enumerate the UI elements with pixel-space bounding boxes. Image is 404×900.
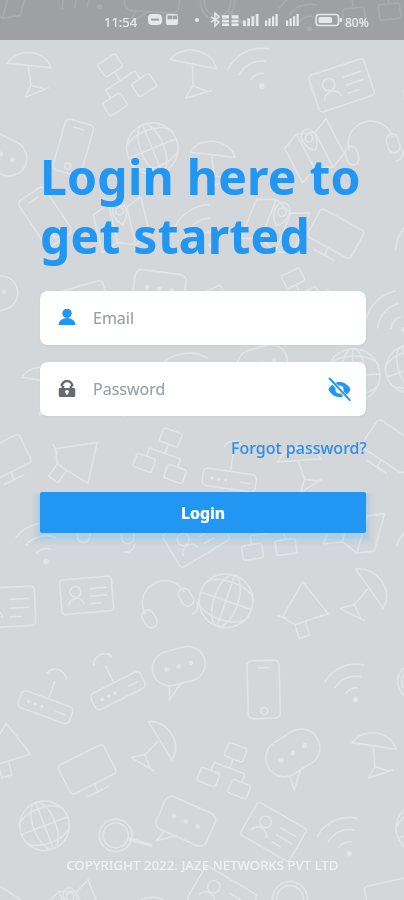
- staticText: 80%: [345, 14, 369, 30]
- button[interactable]: Login: [40, 492, 366, 533]
- button[interactable]: Email: [40, 291, 366, 345]
- staticText: Password: [93, 378, 166, 400]
- staticText: 11:54: [104, 13, 138, 31]
- staticText: Login here to get started: [40, 144, 361, 268]
- staticText: Login: [181, 502, 226, 524]
- staticText: Forgot password?: [231, 437, 367, 459]
- button[interactable]: Show password: [316, 366, 362, 412]
- button[interactable]: Forgot password?: [231, 437, 367, 459]
- button[interactable]: Password: [40, 362, 366, 416]
- staticText: COPYRIGHT 2022. JAZE NETWORKS PVT LTD: [66, 856, 339, 874]
- staticText: Email: [93, 307, 135, 329]
